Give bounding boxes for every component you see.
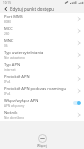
button[interactable]: Typ uwierzytelniania [0, 49, 84, 61]
staticText: Włącz/wyłącz APN [4, 98, 39, 104]
staticText: Protokół APN podczas roamingu [4, 86, 67, 92]
staticText: Nośnik [4, 110, 18, 116]
staticText: Protokół APN [4, 74, 30, 80]
button[interactable]: More [38, 134, 47, 143]
staticText: Więcej [37, 144, 47, 148]
button[interactable]: Typ APN [0, 61, 84, 73]
staticText: 260 [4, 32, 10, 36]
button[interactable]: Protokół APN [0, 73, 84, 85]
staticText: Typ uwierzytelniania [4, 50, 44, 56]
staticText: 8080 [4, 20, 12, 24]
staticText: MNC [4, 38, 14, 44]
staticText: Port MMS [4, 14, 23, 20]
staticText: Edytuj punkt dostępu [10, 6, 55, 12]
staticText: Typ APN [4, 62, 21, 68]
button[interactable]: Nośnik [0, 109, 84, 121]
button[interactable]: Włącz/wyłącz APN [0, 97, 84, 109]
staticText: IPv4 [4, 92, 11, 96]
staticText: 10:15 [3, 1, 11, 5]
staticText: 06 [4, 44, 8, 48]
staticText: Nie ustawiono [4, 56, 25, 60]
button[interactable]: Protokół APN podczas roamingu [0, 85, 84, 97]
staticText: IPv4 [4, 80, 11, 84]
staticText: MCC [4, 26, 13, 32]
button[interactable]: Port MMS [0, 13, 84, 25]
button[interactable]: Back [3, 6, 9, 12]
staticText: internet [4, 68, 16, 72]
button[interactable]: MCC [0, 25, 84, 37]
button[interactable]: MNC [0, 37, 84, 49]
staticText: APN włączony [4, 104, 25, 108]
staticText: Nie określono [4, 116, 25, 120]
